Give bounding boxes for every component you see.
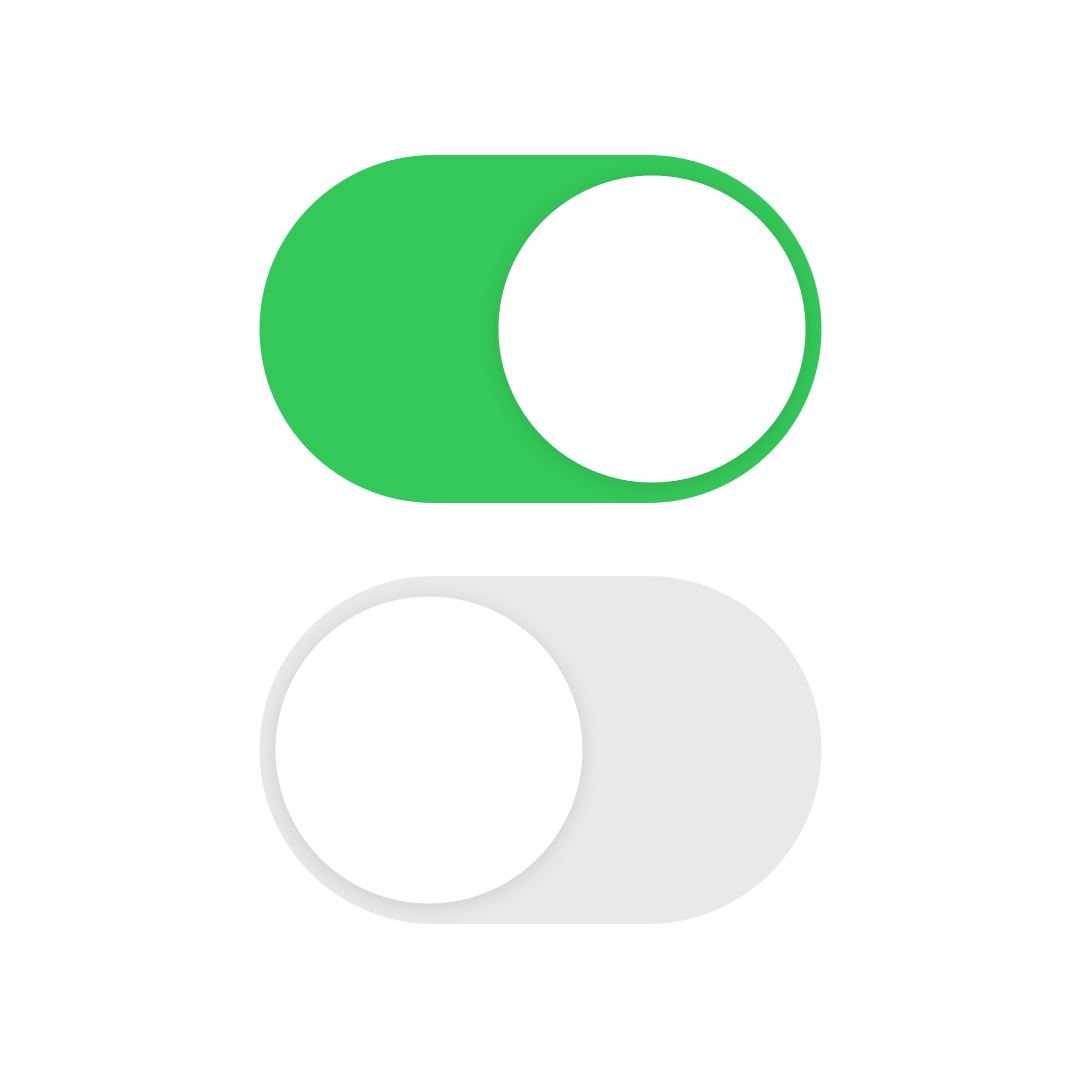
button[interactable]: Setting enabled bbox=[259, 155, 821, 503]
button[interactable]: Setting disabled bbox=[259, 576, 821, 924]
